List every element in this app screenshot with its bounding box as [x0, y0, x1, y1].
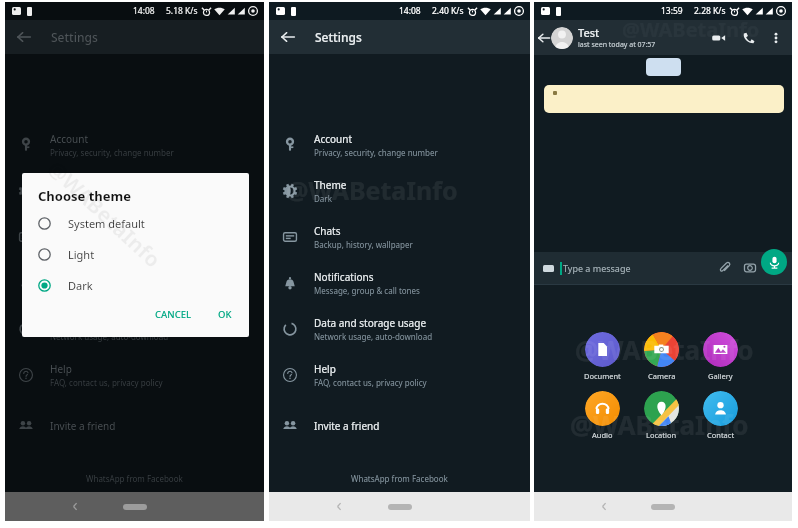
staticText: Chats: [314, 224, 341, 238]
staticText: WhatsApp from Facebook: [86, 473, 183, 484]
button[interactable]: Theme: [5, 168, 264, 214]
button[interactable]: More options: [770, 32, 782, 44]
staticText: CANCEL: [155, 308, 192, 321]
staticText: WhatsApp from Facebook: [351, 473, 448, 484]
button[interactable]: Help: [269, 352, 530, 398]
button[interactable]: Back: [335, 502, 344, 511]
button[interactable]: Profile photo: [551, 27, 573, 49]
staticText: Location: [646, 430, 677, 440]
staticText: Type a message: [563, 262, 631, 274]
staticText: Backup, history, wallpaper: [50, 239, 149, 250]
button[interactable]: Chats: [5, 214, 264, 260]
button[interactable]: Invite a friend: [5, 403, 264, 449]
staticText: Dark: [68, 278, 93, 293]
staticText: 2.28 K/s: [694, 5, 726, 17]
staticText: @WABetaInfo: [42, 154, 167, 275]
staticText: 5.18 K/s: [166, 5, 198, 17]
button[interactable]: System default: [22, 211, 249, 235]
button[interactable]: Invite a friend: [269, 403, 530, 449]
button[interactable]: Account: [5, 122, 264, 168]
staticText: FAQ, contact us, privacy policy: [50, 377, 163, 388]
staticText: Settings: [315, 29, 362, 45]
staticText: Light: [68, 247, 95, 262]
button[interactable]: Chats: [269, 214, 530, 260]
button[interactable]: Contact: [691, 391, 750, 440]
staticText: Audio: [592, 430, 613, 440]
button[interactable]: Location: [632, 391, 691, 440]
staticText: Invite a friend: [314, 419, 380, 433]
button[interactable]: Record voice message: [761, 249, 787, 275]
staticText: Account: [314, 132, 353, 146]
staticText: Data and storage usage: [314, 316, 427, 330]
staticText: Privacy, security, change number: [50, 147, 174, 158]
staticText: Network usage, auto-download: [314, 331, 433, 342]
button[interactable]: Dark: [22, 273, 249, 297]
button[interactable]: Camera: [632, 332, 691, 381]
staticText: 13:59: [661, 5, 683, 17]
button[interactable]: Back: [537, 31, 551, 45]
button[interactable]: Gallery: [691, 332, 750, 381]
button[interactable]: Video call: [711, 31, 726, 45]
staticText: Dark: [50, 193, 68, 204]
button[interactable]: Notifications: [5, 260, 264, 306]
staticText: Chats: [50, 224, 77, 238]
button[interactable]: Home: [123, 504, 147, 510]
button[interactable]: Audio: [573, 391, 632, 440]
staticText: @WABetaInfo: [570, 407, 749, 442]
staticText: FAQ, contact us, privacy policy: [314, 377, 427, 388]
staticText: Dark: [314, 193, 332, 204]
staticText: OK: [218, 308, 232, 321]
button[interactable]: Home: [651, 504, 675, 510]
staticText: Data and storage usage: [50, 316, 163, 330]
staticText: System default: [68, 216, 145, 231]
staticText: Help: [314, 362, 336, 376]
button[interactable]: Theme: [269, 168, 530, 214]
staticText: Backup, history, wallpaper: [314, 239, 413, 250]
staticText: @WABetaInfo: [575, 332, 754, 367]
staticText: Notifications: [50, 270, 110, 284]
staticText: Theme: [50, 178, 83, 192]
button[interactable]: Camera: [744, 262, 756, 274]
button[interactable]: Data and storage usage: [269, 306, 530, 352]
button[interactable]: Attach: [719, 262, 731, 274]
staticText: Network usage, auto-download: [50, 331, 169, 342]
staticText: Contact: [707, 430, 735, 440]
staticText: Theme: [314, 178, 347, 192]
button[interactable]: Account: [269, 122, 530, 168]
button[interactable]: Light: [22, 242, 249, 266]
button[interactable]: Data and storage usage: [5, 306, 264, 352]
button[interactable]: OK: [211, 303, 239, 326]
staticText: @WABetaInfo: [622, 16, 760, 43]
staticText: Gallery: [708, 371, 733, 381]
button[interactable]: Notifications: [269, 260, 530, 306]
staticText: Camera: [648, 371, 676, 381]
button[interactable]: Help: [5, 352, 264, 398]
button[interactable]: Emoji: [543, 264, 554, 273]
button[interactable]: Back: [16, 29, 32, 45]
staticText: Message, group & call tones: [314, 285, 420, 296]
staticText: Message, group & call tones: [50, 285, 156, 296]
staticText: 2.40 K/s: [432, 5, 464, 17]
button[interactable]: Document: [573, 332, 632, 381]
staticText: Settings: [51, 29, 98, 45]
staticText: Choose theme: [38, 187, 132, 205]
staticText: Privacy, security, change number: [314, 147, 438, 158]
staticText: Document: [584, 371, 621, 381]
staticText: 14:08: [133, 5, 155, 17]
staticText: Invite a friend: [50, 419, 116, 433]
staticText: @WABetaInfo: [286, 173, 458, 207]
button[interactable]: Voice call: [742, 31, 755, 44]
staticText: Test: [578, 25, 600, 40]
button[interactable]: Home: [388, 504, 412, 510]
staticText: 14:08: [399, 5, 421, 17]
button[interactable]: CANCEL: [148, 303, 199, 326]
button[interactable]: Back: [280, 29, 296, 45]
staticText: Help: [50, 362, 72, 376]
staticText: Account: [50, 132, 89, 146]
button[interactable]: Back: [71, 502, 80, 511]
staticText: Notifications: [314, 270, 374, 284]
staticText: last seen today at 07:57: [578, 40, 656, 50]
button[interactable]: Back: [600, 502, 609, 511]
